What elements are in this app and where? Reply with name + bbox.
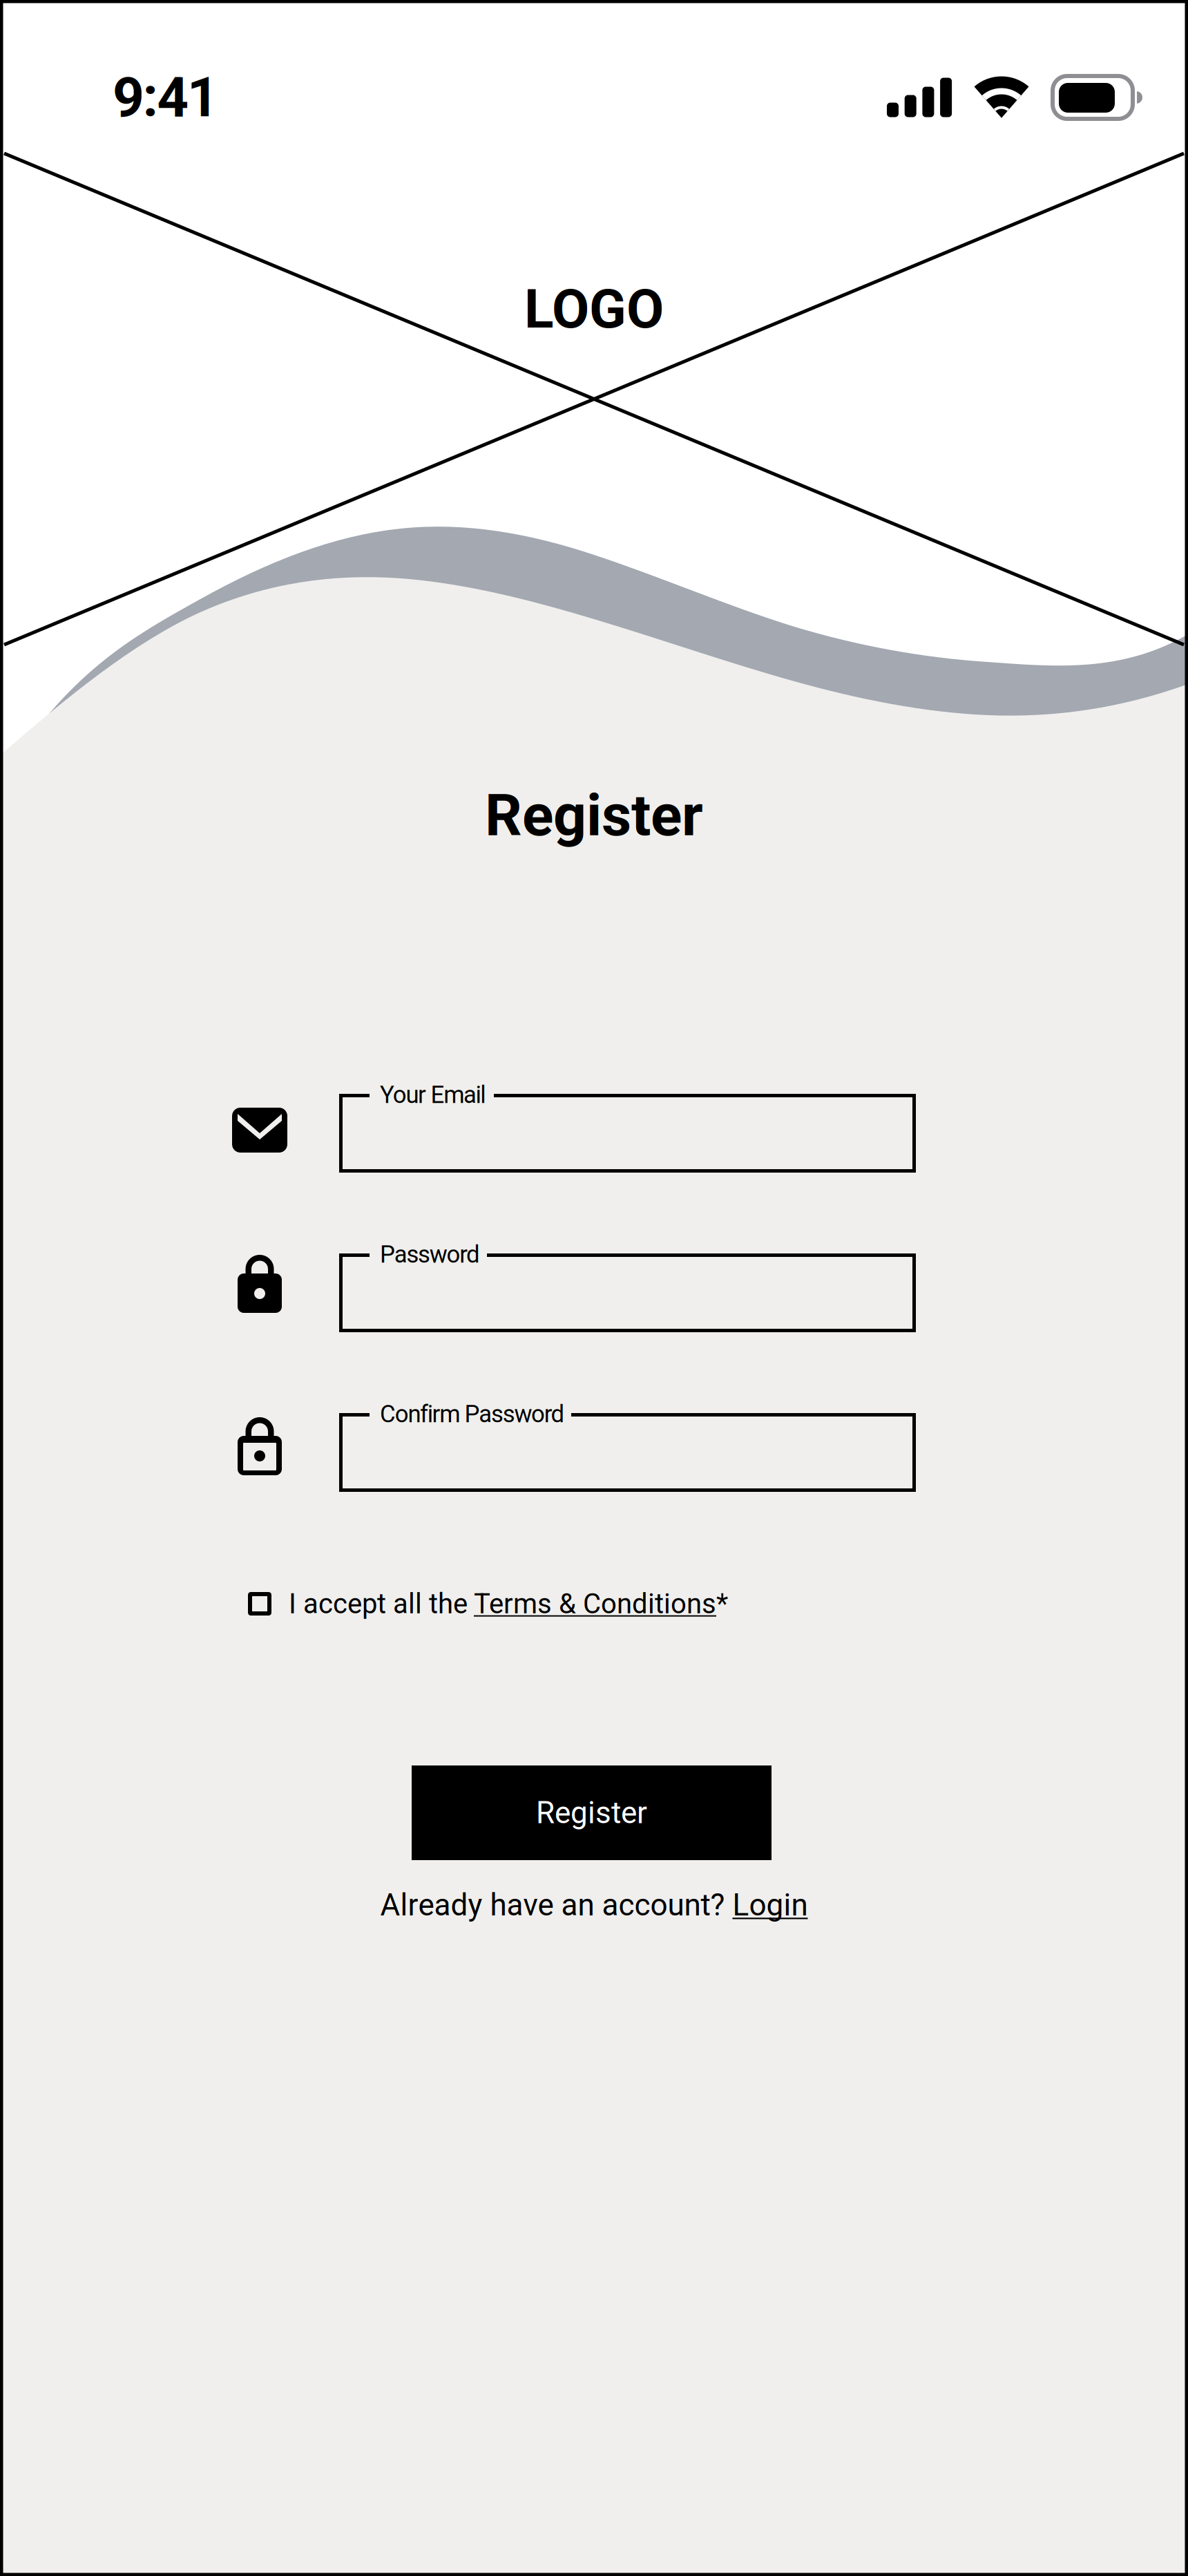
button[interactable]: Already have an account? Login xyxy=(0,1881,1188,1929)
button[interactable]: I accept all the Terms & Conditions* xyxy=(248,1583,773,1625)
staticText: Register xyxy=(485,781,703,849)
staticText: Confirm Password xyxy=(380,1400,565,1428)
staticText: 9:41 xyxy=(113,65,219,130)
button[interactable]: Register xyxy=(412,1765,772,1860)
staticText: Register xyxy=(536,1795,647,1831)
staticText: Already have an account? Login xyxy=(380,1887,808,1923)
staticText: Your Email xyxy=(380,1081,486,1109)
staticText: Password xyxy=(380,1240,480,1268)
staticText: LOGO xyxy=(524,277,664,341)
staticText: I accept all the Terms & Conditions* xyxy=(289,1588,728,1620)
